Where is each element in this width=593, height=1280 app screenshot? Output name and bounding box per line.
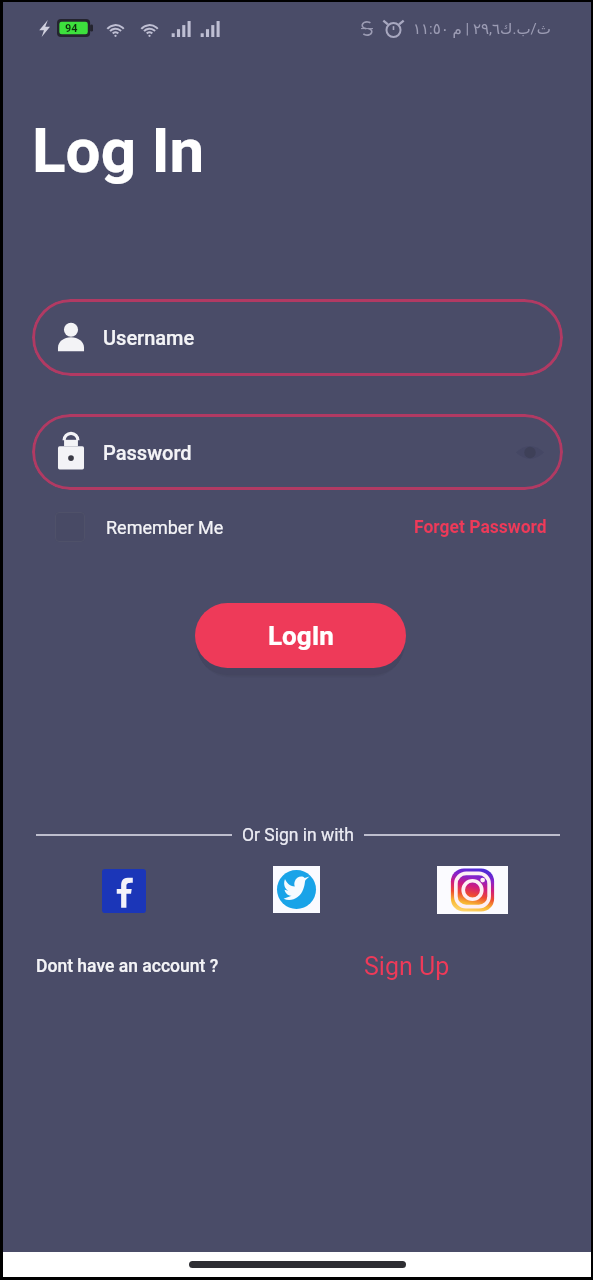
button[interactable]: Sign in with Twitter — [271, 864, 321, 914]
staticText: Or Sign in with — [242, 825, 354, 846]
staticText: ث/ب.ك٢٩,٦ | م ١١:٥٠ — [413, 20, 551, 38]
staticText: Dont have an account ? — [36, 956, 219, 977]
button[interactable]: Remember Me — [55, 512, 224, 542]
staticText: Remember Me — [106, 517, 224, 538]
other: Show password — [515, 439, 545, 466]
staticText: Password — [103, 441, 192, 464]
button[interactable]: LogIn — [195, 603, 406, 668]
staticText: LogIn — [268, 621, 334, 651]
button[interactable]: Sign in with Instagram — [437, 866, 508, 914]
button[interactable]: Username — [32, 299, 563, 376]
staticText: Username — [103, 326, 195, 349]
button[interactable]: Password — [32, 414, 563, 490]
staticText: 94 — [65, 22, 78, 35]
button[interactable]: Sign Up — [364, 952, 450, 981]
button[interactable]: Sign in with Facebook — [101, 868, 147, 914]
staticText: Log In — [32, 114, 205, 187]
button[interactable]: Forget Password — [414, 517, 547, 538]
